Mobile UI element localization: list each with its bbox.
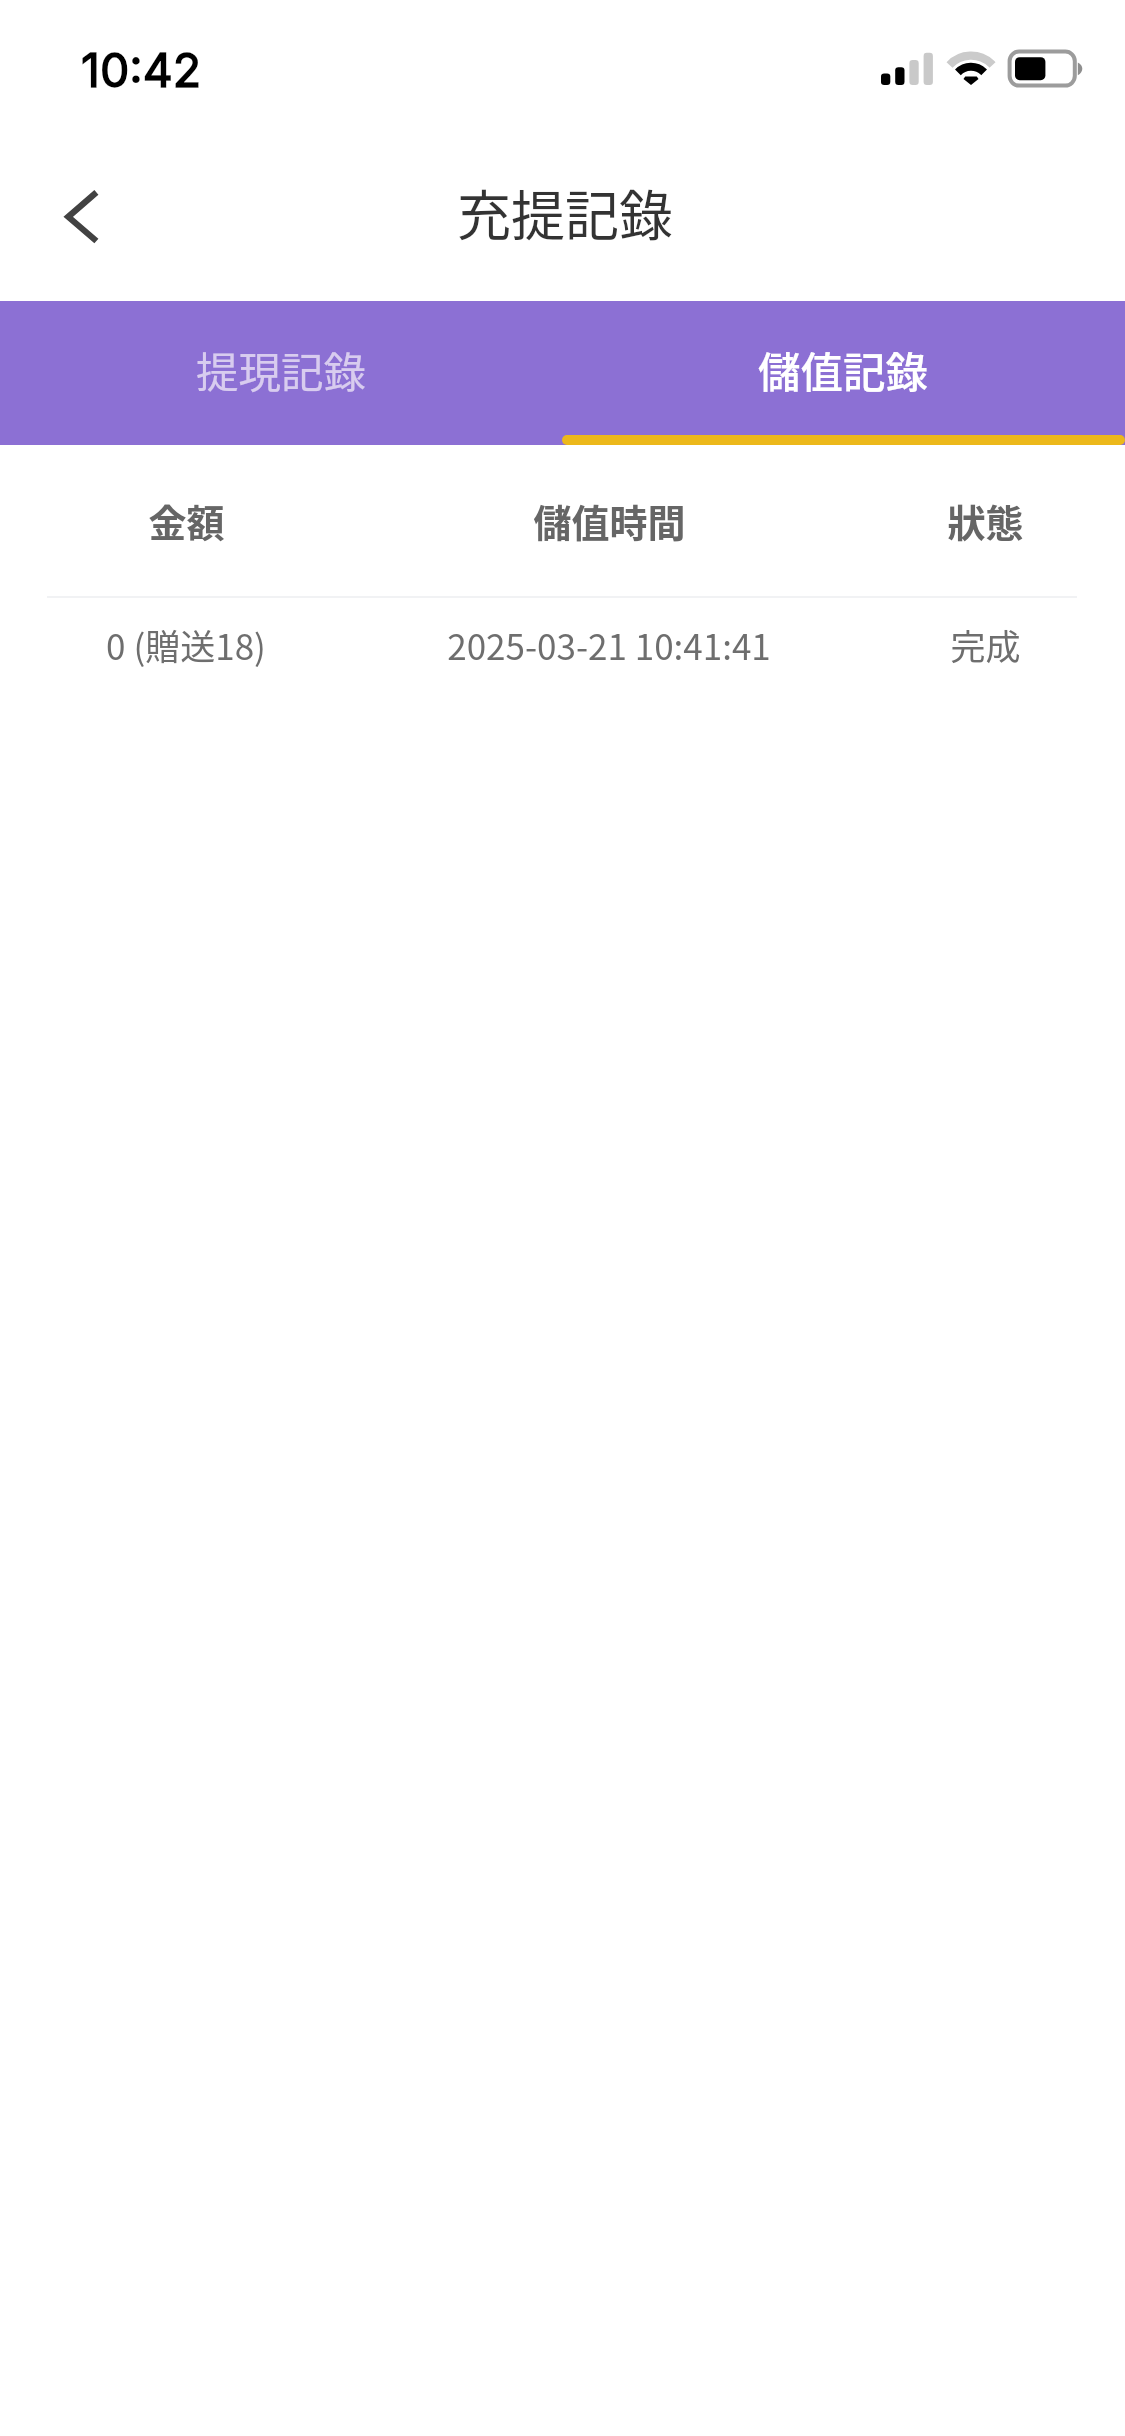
staticText: 充提記錄 <box>457 173 673 251</box>
button[interactable]: 儲值記錄 <box>562 301 1125 445</box>
staticText: 10:42 <box>81 42 202 98</box>
staticText: 0 (贈送18) <box>106 619 266 670</box>
button[interactable]: 提現記錄 <box>0 301 562 445</box>
button[interactable]: 0 (贈送18) <box>0 598 1125 698</box>
staticText: 完成 <box>950 619 1021 670</box>
staticText: 2025-03-21 10:41:41 <box>447 619 771 670</box>
staticText: 儲值記錄 <box>758 339 929 401</box>
button[interactable]: Back <box>36 169 132 265</box>
staticText: 提現記錄 <box>196 339 367 401</box>
staticText: 儲值時間 <box>533 493 686 548</box>
staticText: 金額 <box>148 493 225 548</box>
staticText: 狀態 <box>947 493 1024 548</box>
